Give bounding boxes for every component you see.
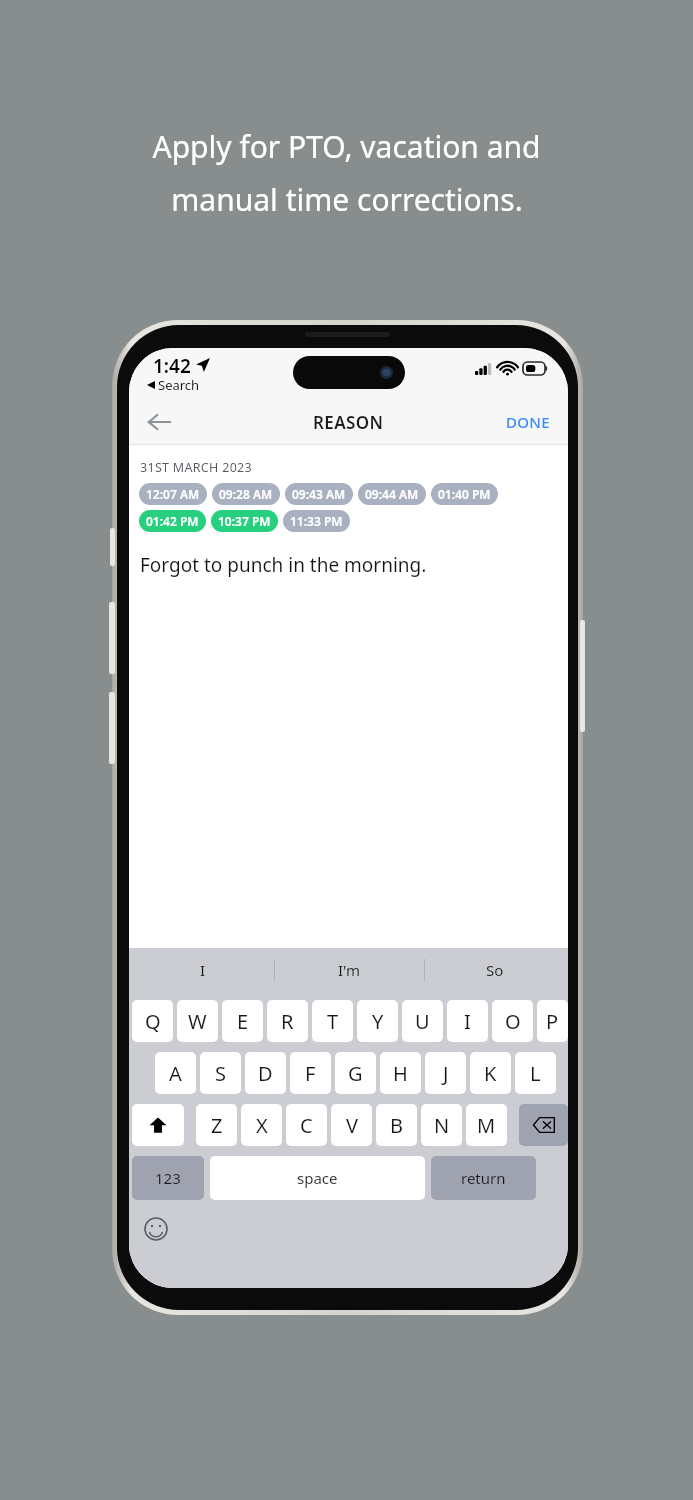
button[interactable]: S [200, 1052, 241, 1094]
button[interactable]: D [245, 1052, 286, 1094]
staticText: H [393, 1060, 408, 1087]
button[interactable]: space [210, 1156, 425, 1200]
button[interactable]: 01:42 PM [139, 510, 206, 532]
staticText: So [486, 960, 504, 980]
staticText: Apply for PTO, vacation and [152, 126, 541, 167]
staticText: 09:43 AM [292, 486, 346, 502]
staticText: 123 [155, 1168, 181, 1188]
staticText: I [200, 960, 206, 980]
button[interactable]: X [241, 1104, 282, 1146]
button[interactable]: 09:44 AM [358, 483, 426, 505]
button[interactable]: 10:37 PM [211, 510, 278, 532]
button[interactable]: 123 [132, 1156, 204, 1200]
button[interactable]: return [431, 1156, 536, 1200]
button[interactable]: I [447, 1000, 488, 1042]
button[interactable]: I'm [276, 948, 422, 992]
button[interactable]: Q [132, 1000, 173, 1042]
staticText: S [215, 1060, 226, 1087]
button[interactable]: 09:43 AM [285, 483, 353, 505]
button[interactable]: 11:33 PM [283, 510, 350, 532]
staticText: A [169, 1060, 182, 1087]
button[interactable]: G [335, 1052, 376, 1094]
staticText: C [300, 1112, 313, 1139]
staticText: manual time corrections. [171, 179, 523, 220]
staticText: Z [211, 1112, 223, 1139]
staticText: V [346, 1112, 358, 1139]
staticText: space [297, 1168, 338, 1188]
staticText: X [256, 1112, 268, 1139]
staticText: Q [145, 1008, 161, 1035]
button[interactable]: A [155, 1052, 196, 1094]
button[interactable]: U [402, 1000, 443, 1042]
staticText: return [461, 1168, 506, 1188]
button[interactable]: K [470, 1052, 511, 1094]
staticText: 01:40 PM [438, 486, 491, 502]
staticText: 10:37 PM [218, 513, 271, 529]
staticText: J [443, 1060, 449, 1087]
staticText: 09:44 AM [365, 486, 419, 502]
staticText: Forgot to punch in the morning. [140, 552, 427, 578]
staticText: Y [372, 1008, 384, 1035]
staticText: T [327, 1008, 339, 1035]
button[interactable]: J [425, 1052, 466, 1094]
button[interactable]: W [177, 1000, 218, 1042]
button[interactable]: N [421, 1104, 462, 1146]
staticText: 11:33 PM [290, 513, 343, 529]
button[interactable]: I [129, 948, 276, 992]
staticText: I'm [338, 960, 361, 980]
staticText: F [305, 1060, 316, 1087]
button[interactable]: T [312, 1000, 353, 1042]
staticText: REASON [313, 411, 384, 434]
staticText: L [530, 1060, 541, 1087]
staticText: B [390, 1112, 403, 1139]
staticText: 1:42 [153, 353, 191, 379]
button[interactable]: 09:28 AM [212, 483, 280, 505]
button[interactable]: H [380, 1052, 421, 1094]
staticText: U [415, 1008, 430, 1035]
staticText: N [434, 1112, 450, 1139]
staticText: E [237, 1008, 249, 1035]
button[interactable]: DONE [502, 404, 554, 440]
staticText: 09:28 AM [219, 486, 273, 502]
staticText: W [188, 1008, 207, 1035]
button[interactable]: F [290, 1052, 331, 1094]
button[interactable]: 01:40 PM [431, 483, 498, 505]
staticText: K [484, 1060, 497, 1087]
staticText: 12:07 AM [146, 486, 200, 502]
staticText: P [546, 1008, 559, 1035]
button[interactable]: V [331, 1104, 372, 1146]
staticText: Search [158, 376, 200, 394]
staticText: 01:42 PM [146, 513, 199, 529]
button[interactable]: So [422, 948, 568, 992]
button[interactable]: E [222, 1000, 263, 1042]
button[interactable]: M [466, 1104, 507, 1146]
staticText: DONE [506, 412, 550, 432]
button[interactable]: Delete [519, 1104, 568, 1146]
button[interactable]: Shift [132, 1104, 184, 1146]
button[interactable]: Back [137, 400, 181, 444]
button[interactable]: P [537, 1000, 568, 1042]
button[interactable]: 12:07 AM [139, 483, 207, 505]
staticText: G [348, 1060, 363, 1087]
staticText: D [258, 1060, 273, 1087]
button[interactable]: L [515, 1052, 556, 1094]
staticText: I [464, 1008, 471, 1035]
button[interactable]: Emoji [143, 1216, 169, 1242]
button[interactable]: Y [357, 1000, 398, 1042]
button[interactable]: C [286, 1104, 327, 1146]
staticText: 31ST MARCH 2023 [140, 459, 252, 476]
button[interactable]: Z [196, 1104, 237, 1146]
staticText: R [281, 1008, 294, 1035]
button[interactable]: O [492, 1000, 533, 1042]
button[interactable]: B [376, 1104, 417, 1146]
staticText: M [477, 1112, 496, 1139]
staticText: O [505, 1008, 521, 1035]
button[interactable]: R [267, 1000, 308, 1042]
